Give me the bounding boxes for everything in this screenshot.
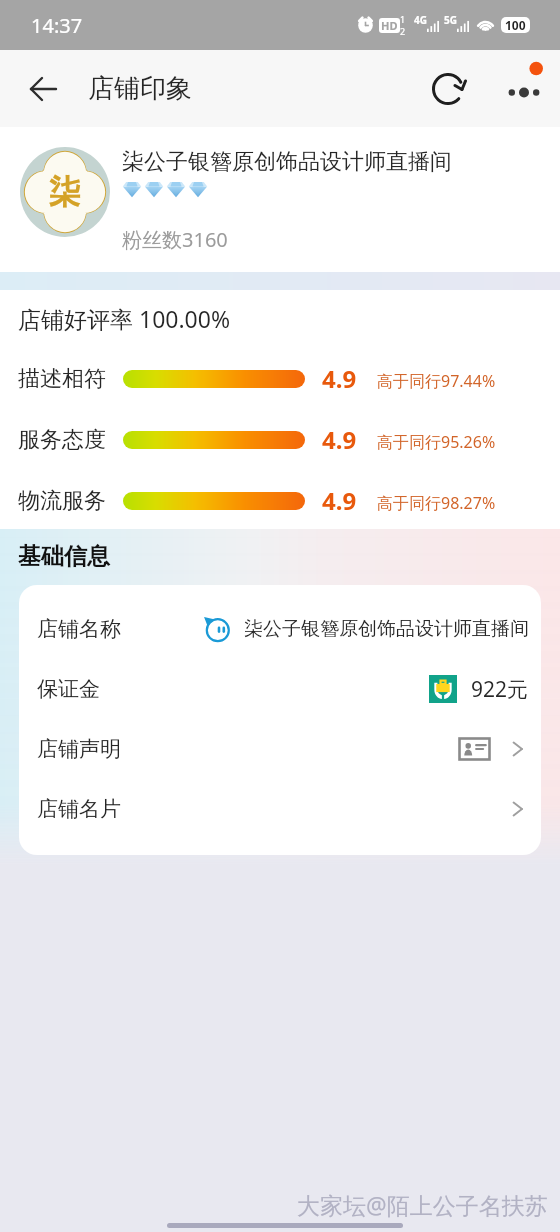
button[interactable]: 店铺名片 xyxy=(19,779,541,839)
staticText: 2 xyxy=(400,25,406,37)
button[interactable]: More options xyxy=(490,50,560,127)
button[interactable]: 保证金 xyxy=(19,659,541,719)
staticText: 柒 xyxy=(49,172,81,212)
staticText: 基础信息 xyxy=(18,542,110,571)
button[interactable]: Refresh xyxy=(406,50,490,127)
staticText: 4.9 xyxy=(322,423,357,456)
staticText: 店铺声明 xyxy=(37,736,121,762)
staticText: 店铺印象 xyxy=(88,72,192,105)
staticText: 柒公子银簪原创饰品设计师直播间 xyxy=(244,617,529,641)
staticText: 922元 xyxy=(471,675,529,704)
staticText: 大家坛@陌上公子名扶苏 xyxy=(297,1189,548,1220)
staticText: 店铺名称 xyxy=(37,616,121,642)
staticText: 4.9 xyxy=(322,484,357,517)
staticText: 4.9 xyxy=(322,362,357,395)
staticText: 高于同行98.27% xyxy=(377,492,496,514)
staticText: 服务态度 xyxy=(18,426,106,454)
staticText: 高于同行95.26% xyxy=(377,431,496,453)
button[interactable]: 店铺声明 xyxy=(19,719,541,779)
staticText: 物流服务 xyxy=(18,487,106,515)
staticText: 店铺名片 xyxy=(37,796,121,822)
button[interactable]: Back xyxy=(0,50,88,127)
staticText: HD xyxy=(381,18,398,33)
staticText: 5G xyxy=(444,13,457,27)
staticText: 保证金 xyxy=(37,676,100,702)
staticText: 1 xyxy=(400,13,406,25)
staticText: 14:37 xyxy=(31,12,83,39)
staticText: 高于同行97.44% xyxy=(377,370,496,392)
staticText: 柒公子银簪原创饰品设计师直播间 xyxy=(122,148,452,176)
staticText: 粉丝数3160 xyxy=(122,226,228,253)
staticText: 4G xyxy=(414,13,427,27)
staticText: 店铺好评率 100.00% xyxy=(18,303,231,334)
staticText: 100 xyxy=(505,17,526,33)
staticText: 描述相符 xyxy=(18,365,106,393)
button[interactable]: 店铺名称 xyxy=(19,599,541,659)
